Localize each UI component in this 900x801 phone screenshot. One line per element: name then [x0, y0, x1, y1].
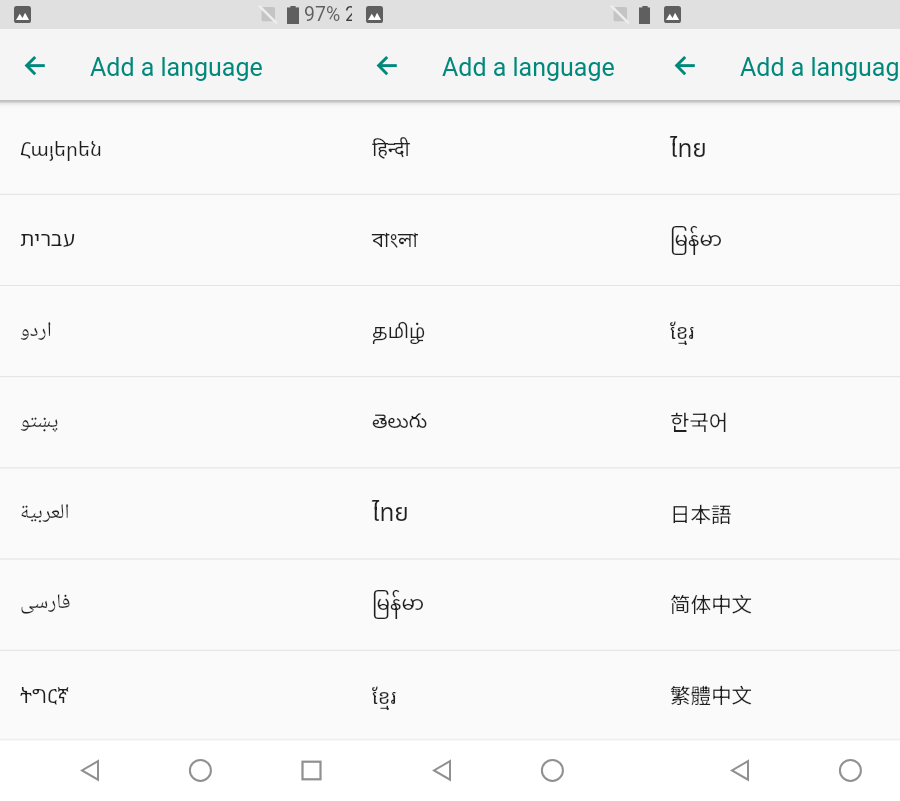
- button[interactable]: ខ្មែរ: [352, 650, 650, 738]
- staticText: ไทย: [372, 495, 409, 532]
- button[interactable]: বাংলা: [352, 194, 650, 285]
- staticText: 繁體中文: [670, 679, 752, 709]
- button[interactable]: Recent apps: [288, 738, 335, 801]
- button[interactable]: العربية: [0, 468, 352, 559]
- button[interactable]: ትግርኛ: [0, 650, 352, 738]
- button[interactable]: Navigate up: [13, 43, 57, 87]
- button[interactable]: Home: [177, 738, 224, 801]
- staticText: ខ្មែរ: [670, 318, 695, 345]
- staticText: اردو: [20, 314, 52, 350]
- staticText: မြန်မာ: [670, 220, 723, 264]
- staticText: தமிழ்: [372, 321, 426, 345]
- staticText: فارسی: [20, 586, 71, 622]
- staticText: 简体中文: [670, 588, 752, 618]
- button[interactable]: ไทย: [352, 468, 650, 559]
- button[interactable]: తెలుగు: [352, 377, 650, 468]
- button[interactable]: فارسی: [0, 559, 352, 650]
- button[interactable]: 简体中文: [650, 559, 900, 650]
- button[interactable]: پښتو: [0, 377, 352, 468]
- staticText: 日本語: [670, 498, 732, 528]
- staticText: Add a language: [442, 53, 615, 82]
- staticText: Հայերեն: [20, 135, 102, 162]
- button[interactable]: Հայերեն: [0, 103, 352, 194]
- staticText: Add a language: [740, 53, 900, 82]
- button[interactable]: தமிழ்: [352, 285, 650, 376]
- button[interactable]: ไทย: [650, 103, 900, 194]
- staticText: বাংলা: [372, 229, 418, 256]
- staticText: 97%: [304, 3, 341, 26]
- button[interactable]: 한국어: [650, 377, 900, 468]
- button[interactable]: မြန်မာ: [352, 559, 650, 650]
- staticText: ไทย: [670, 131, 707, 168]
- staticText: 한국어: [670, 406, 728, 436]
- button[interactable]: Back: [716, 738, 763, 801]
- staticText: עברית: [20, 224, 76, 253]
- staticText: العربية: [20, 496, 70, 532]
- button[interactable]: Navigate up: [663, 43, 707, 87]
- button[interactable]: Home: [529, 738, 576, 801]
- button[interactable]: עברית: [0, 194, 352, 285]
- button[interactable]: हिन्दी: [352, 103, 650, 194]
- staticText: ትግርኛ: [20, 682, 69, 709]
- staticText: မြန်မာ: [372, 584, 425, 628]
- button[interactable]: မြန်မာ: [650, 194, 900, 285]
- button[interactable]: Home: [827, 738, 874, 801]
- button[interactable]: ខ្មែរ: [650, 285, 900, 376]
- staticText: हिन्दी: [372, 138, 410, 164]
- staticText: ខ្មែរ: [372, 683, 397, 710]
- staticText: తెలుగు: [372, 411, 428, 438]
- button[interactable]: 繁體中文: [650, 650, 900, 738]
- staticText: پښتو: [20, 405, 59, 441]
- button[interactable]: Navigate up: [365, 43, 409, 87]
- staticText: Add a language: [90, 53, 263, 82]
- button[interactable]: اردو: [0, 285, 352, 376]
- staticText: 2:41: [345, 3, 352, 26]
- button[interactable]: Back: [66, 738, 113, 801]
- button[interactable]: 日本語: [650, 468, 900, 559]
- button[interactable]: Back: [418, 738, 465, 801]
